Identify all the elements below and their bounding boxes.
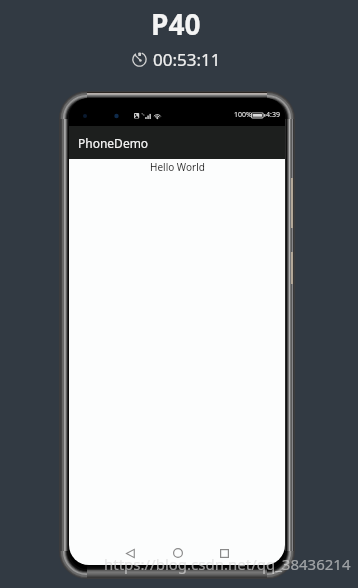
button[interactable]: Home xyxy=(154,541,201,565)
staticText: 100% xyxy=(234,110,252,120)
button[interactable]: Recents xyxy=(201,541,248,565)
staticText: P40 xyxy=(151,5,201,43)
staticText: Hello World xyxy=(150,160,205,174)
button[interactable]: Back xyxy=(107,541,154,565)
staticText: 4:39 xyxy=(266,110,280,120)
staticText: PhoneDemo xyxy=(78,135,149,151)
staticText: https://blog.csdn.net/qq_38436214 xyxy=(104,554,351,574)
button[interactable]: PhoneDemo xyxy=(69,126,285,159)
staticText: 00:53:11 xyxy=(153,48,221,71)
